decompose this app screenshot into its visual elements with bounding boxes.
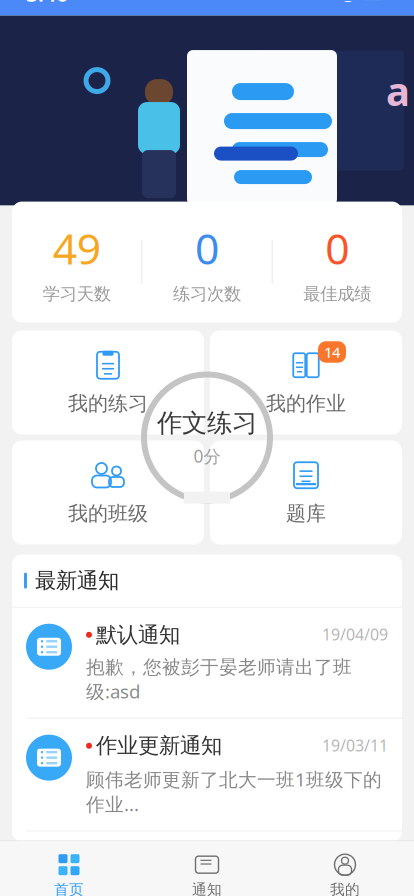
staticText: 首页 xyxy=(54,881,84,896)
staticText: 0分 xyxy=(193,445,220,468)
staticText: 练习次数 xyxy=(173,283,241,304)
button[interactable]: 题库 xyxy=(210,440,402,544)
staticText: 我的 xyxy=(330,881,360,896)
button[interactable]: 我的练习 xyxy=(12,330,204,434)
staticText: 0 xyxy=(195,220,219,276)
staticText: 最佳成绩 xyxy=(303,283,371,304)
staticText: 49 xyxy=(53,220,101,276)
staticText: 作业更新通知 xyxy=(96,733,222,759)
staticText: 作文练习 xyxy=(157,407,257,439)
staticText: 默认通知 xyxy=(96,622,180,648)
staticText: 19/03/11 xyxy=(322,735,388,756)
button[interactable]: 作文练习 xyxy=(141,371,273,503)
staticText: 学习天数 xyxy=(43,283,111,304)
staticText: 我的作业 xyxy=(266,391,346,416)
staticText: a xyxy=(386,64,410,117)
staticText: 我的班级 xyxy=(68,501,148,526)
button[interactable]: 作业更新通知 xyxy=(12,719,402,831)
staticText: 顾伟老师更新了北大一班1班级下的作业... xyxy=(86,767,382,816)
staticText: 0 xyxy=(325,220,349,276)
staticText: 19/04/09 xyxy=(322,624,388,645)
staticText: 我的练习 xyxy=(68,391,148,416)
button[interactable]: 首页 xyxy=(0,847,138,896)
staticText: 通知 xyxy=(192,881,222,896)
button[interactable]: 我的 xyxy=(276,847,414,896)
staticText: 14 xyxy=(324,342,340,362)
button[interactable]: 我的班级 xyxy=(12,440,204,544)
button[interactable]: 14 xyxy=(210,330,402,434)
staticText: 最新通知 xyxy=(35,567,119,594)
staticText: 3:46 xyxy=(26,0,68,8)
button[interactable]: 通知 xyxy=(138,847,276,896)
button[interactable]: 默认通知 xyxy=(12,608,402,719)
staticText: 抱歉，您被彭于晏老师请出了班级:asd xyxy=(86,656,352,704)
staticText: 题库 xyxy=(286,501,326,526)
